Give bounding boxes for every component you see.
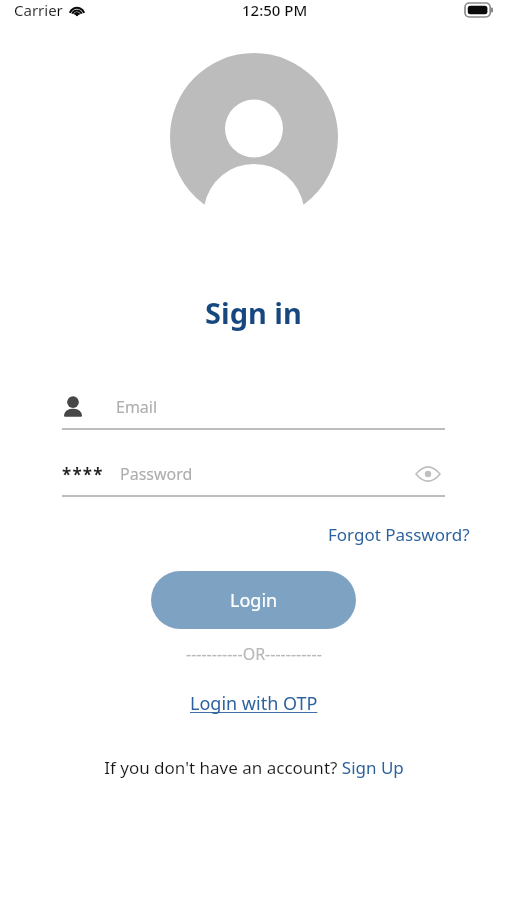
button[interactable]: **** <box>62 453 445 495</box>
button[interactable]: Email <box>62 386 445 430</box>
staticText: Login <box>230 588 278 613</box>
staticText: Login with OTP <box>190 691 318 716</box>
staticText: Carrier <box>14 0 63 20</box>
button[interactable]: If you don't have an account? Sign Up <box>100 752 408 783</box>
button[interactable]: Login <box>151 571 356 629</box>
button[interactable]: Forgot Password? <box>326 519 472 550</box>
staticText: 12:50 PM <box>242 0 308 20</box>
staticText: If you don't have an account? Sign Up <box>104 756 404 779</box>
button[interactable]: Login with OTP <box>186 687 322 720</box>
staticText: Forgot Password? <box>328 523 470 546</box>
staticText: Sign in <box>205 293 302 332</box>
staticText: Email <box>116 396 158 418</box>
staticText: Password <box>120 463 193 485</box>
staticText: -----------OR----------- <box>186 643 322 665</box>
staticText: **** <box>62 463 104 486</box>
button[interactable]: Show password <box>411 457 445 491</box>
